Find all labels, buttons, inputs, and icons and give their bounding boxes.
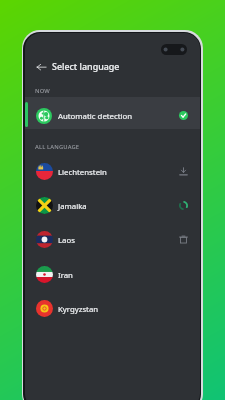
- staticText: Automatic detection: [58, 111, 133, 122]
- button[interactable]: Back: [25, 54, 200, 78]
- button[interactable]: Kyrgyzstan: [25, 292, 200, 325]
- button[interactable]: Liechtenstein: [25, 155, 200, 188]
- staticText: NOW: [35, 87, 50, 95]
- button[interactable]: Download: [178, 166, 189, 177]
- staticText: ALL LANGUAGE: [35, 143, 80, 151]
- staticText: Jamaika: [58, 201, 87, 212]
- button[interactable]: Iran: [25, 258, 200, 291]
- staticText: Liechtenstein: [58, 167, 107, 178]
- staticText: Laos: [58, 235, 75, 246]
- button[interactable]: Delete: [178, 234, 189, 245]
- button[interactable]: Jamaika: [25, 189, 200, 222]
- button[interactable]: Automatic detection: [25, 97, 200, 129]
- button[interactable]: Downloading: [178, 200, 189, 211]
- staticText: Iran: [58, 270, 73, 281]
- button[interactable]: Laos: [25, 223, 200, 256]
- button[interactable]: Back: [36, 61, 47, 72]
- staticText: Select language: [52, 60, 120, 72]
- staticText: Kyrgyzstan: [58, 304, 99, 315]
